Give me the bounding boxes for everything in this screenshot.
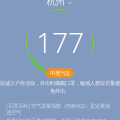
button[interactable]: 杭州 bbox=[42, 0, 77, 9]
staticText: 177 bbox=[36, 23, 84, 61]
staticText: [百度百科] 空气质量指数（简称AQI）是定量描述空气 bbox=[6, 102, 110, 116]
staticText: ⌄ bbox=[66, 0, 73, 6]
staticText: 杭州 bbox=[46, 0, 64, 7]
staticText: 中度污染 bbox=[50, 70, 70, 76]
staticText: 免外出。 bbox=[50, 88, 70, 94]
button[interactable]: 中度污染 bbox=[46, 68, 74, 78]
staticText: 应减少户外活动，外出时佩戴口罩，敏感人群应尽量避 bbox=[0, 80, 120, 87]
staticText: 质量状况的无量纲指数，主要污染物为PM2.5。 bbox=[6, 117, 111, 120]
